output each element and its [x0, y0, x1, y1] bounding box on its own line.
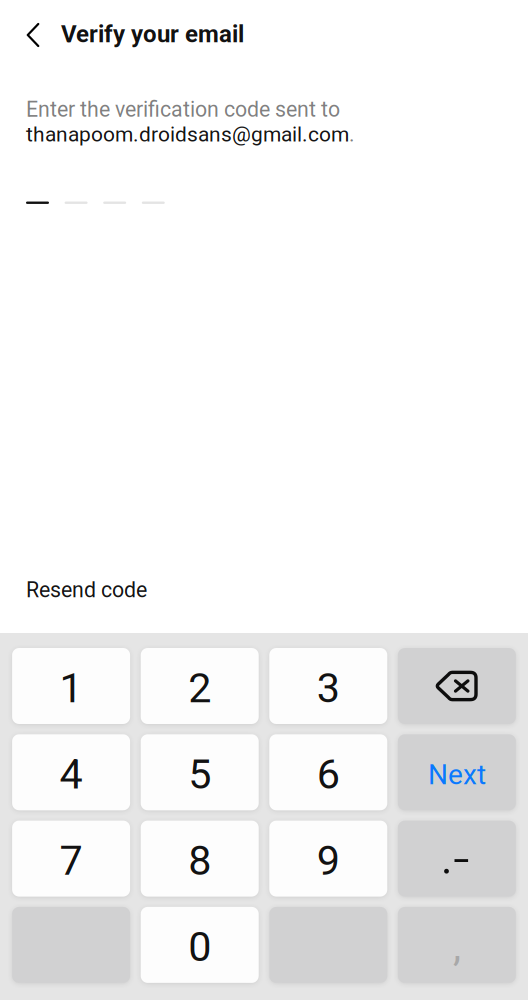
button[interactable]: 1 — [12, 648, 130, 724]
staticText: thanapoom.droidsans@gmail.com — [26, 122, 349, 146]
button[interactable]: Period and dash — [398, 821, 516, 897]
staticText: 1 — [60, 664, 83, 712]
staticText: 0 — [188, 923, 211, 971]
staticText: . — [349, 122, 355, 146]
staticText: 3 — [317, 664, 340, 712]
button[interactable]: 2 — [141, 648, 259, 724]
staticText: Next — [428, 758, 486, 791]
button[interactable]: 3 — [269, 648, 387, 724]
staticText: Resend code — [26, 577, 147, 602]
button[interactable]: 8 — [141, 821, 259, 897]
button[interactable]: Delete — [398, 648, 516, 724]
staticText: 7 — [60, 836, 83, 885]
staticText: Verify your email — [61, 20, 244, 48]
button[interactable]: 4 — [12, 734, 130, 810]
staticText: Enter the verification code sent to — [26, 97, 340, 122]
staticText: 4 — [60, 750, 83, 798]
button[interactable]: Resend code — [0, 575, 528, 605]
staticText: , — [453, 922, 461, 970]
button[interactable]: Next — [398, 734, 516, 810]
button[interactable]: 5 — [141, 734, 259, 810]
button[interactable]: 6 — [269, 734, 387, 810]
staticText: 9 — [317, 836, 340, 885]
button[interactable]: 0 — [141, 907, 259, 983]
button[interactable]: Back — [16, 12, 50, 56]
button[interactable]: 9 — [269, 821, 387, 897]
staticText: 6 — [317, 750, 340, 798]
button[interactable]: 7 — [12, 821, 130, 897]
staticText: 8 — [188, 836, 211, 885]
staticText: 5 — [188, 750, 211, 798]
staticText: 2 — [188, 664, 211, 712]
